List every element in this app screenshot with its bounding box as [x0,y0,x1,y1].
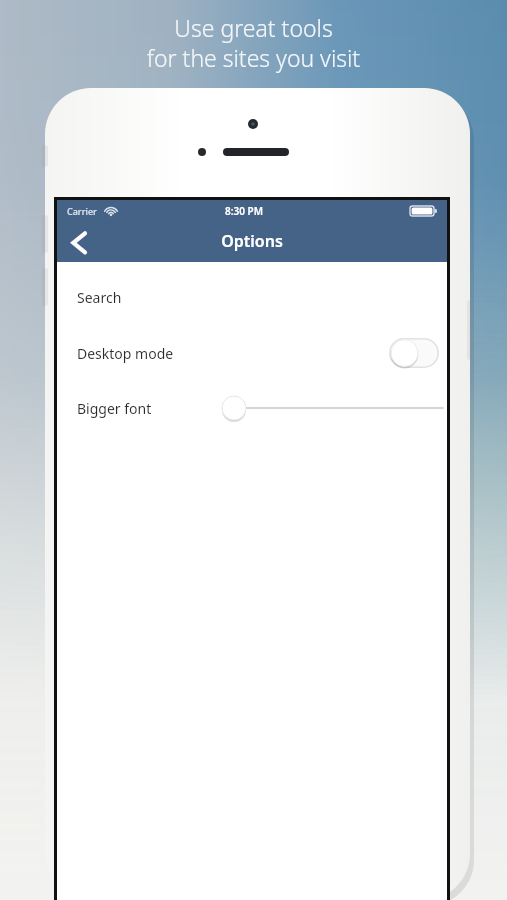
staticText: Search [77,288,122,307]
button[interactable]: Search [57,274,447,320]
staticText: Bigger font [77,399,152,418]
button[interactable]: Back [59,222,103,262]
button[interactable]: Desktop mode [57,328,447,378]
staticText: Carrier [67,205,97,217]
button[interactable]: Bigger font [57,384,447,432]
staticText: Use great tools for the sites you visit [0,12,507,900]
staticText: Desktop mode [77,344,174,363]
staticText: 8:30 PM [225,204,263,218]
staticText: Options [57,230,447,254]
